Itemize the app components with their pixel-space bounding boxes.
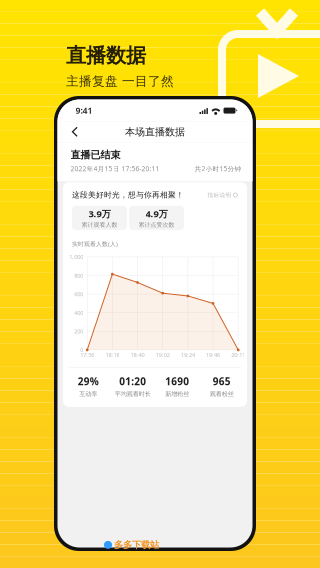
- staticText: 800: [74, 272, 83, 279]
- staticText: 9:41: [75, 105, 92, 116]
- staticText: 观看粉丝: [210, 390, 234, 398]
- staticText: 17:56: [80, 351, 94, 358]
- staticText: 累计观看人数: [81, 221, 117, 228]
- staticText: 共2小时15分钟: [194, 164, 241, 173]
- staticText: 29%: [78, 374, 99, 388]
- staticText: 平均观看时长: [115, 390, 151, 398]
- staticText: 主播复盘 一目了然: [66, 73, 174, 89]
- staticText: 1,000: [69, 253, 83, 261]
- staticText: 4.9万: [145, 207, 167, 220]
- staticText: 累计点赞次数: [138, 221, 174, 228]
- staticText: 965: [213, 374, 231, 388]
- staticText: 1690: [165, 374, 189, 388]
- staticText: 指标说明: [207, 191, 231, 199]
- staticText: 本场直播数据: [125, 126, 185, 138]
- staticText: 多多下载站: [114, 539, 159, 551]
- staticText: 互动率: [79, 390, 97, 398]
- staticText: 2022年4月15日 17:56-20:11: [70, 164, 159, 173]
- staticText: 200: [74, 327, 83, 335]
- staticText: 600: [74, 290, 83, 298]
- staticText: 直播数据: [66, 43, 146, 68]
- staticText: 20:11: [231, 351, 245, 358]
- button[interactable]: 指标说明: [207, 191, 238, 199]
- staticText: 01:20: [119, 374, 146, 388]
- staticText: 这段美好时光，想与你再相聚！: [72, 190, 184, 200]
- staticText: 400: [74, 309, 83, 316]
- button[interactable]: 返回: [64, 121, 85, 142]
- staticText: 实时观看人数(人): [72, 240, 118, 248]
- staticText: 新增粉丝: [165, 390, 189, 398]
- staticText: 19:02: [156, 351, 170, 358]
- staticText: 3.9万: [88, 207, 110, 220]
- staticText: 18:40: [130, 351, 144, 358]
- staticText: 19:24: [181, 351, 195, 358]
- staticText: 18:18: [105, 351, 119, 358]
- staticText: 19:46: [206, 351, 220, 358]
- staticText: 直播已结束: [70, 148, 120, 161]
- staticText: 0: [80, 346, 83, 354]
